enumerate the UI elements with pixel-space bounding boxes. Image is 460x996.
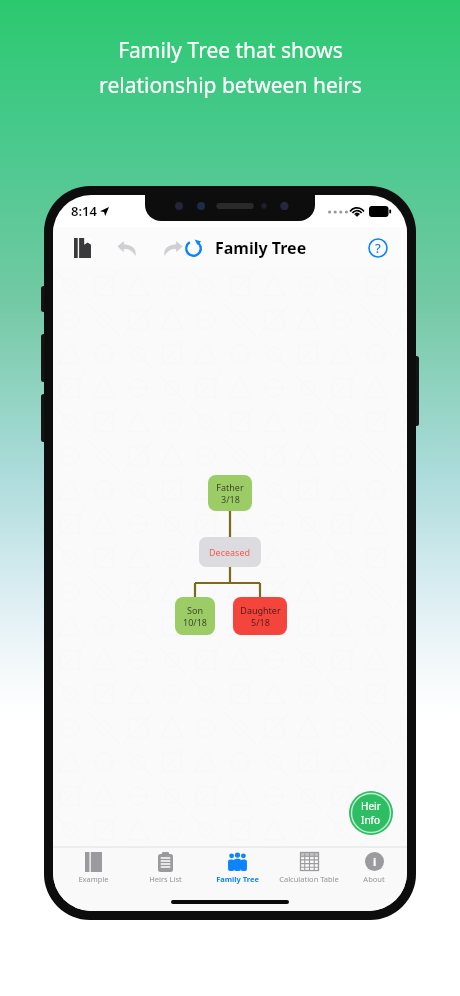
staticText: Heir — [361, 799, 381, 813]
staticText: Daughter — [240, 604, 281, 616]
staticText: ? — [375, 239, 381, 257]
staticText: Family Tree — [215, 237, 307, 259]
staticText: Info — [361, 813, 381, 827]
staticText: relationship between heirs — [99, 71, 362, 100]
staticText: Son — [187, 604, 203, 616]
button[interactable]: Heirs List — [129, 847, 201, 893]
button[interactable]: Calculation Table — [273, 847, 345, 893]
staticText: 10/18 — [183, 616, 207, 628]
staticText: 8:14 — [71, 202, 97, 220]
staticText: Heirs List — [149, 874, 182, 884]
staticText: 3/18 — [221, 493, 240, 505]
staticText: Example — [78, 874, 109, 884]
button[interactable]: Daughter — [233, 597, 287, 635]
button[interactable]: Example — [57, 847, 129, 893]
staticText: Family Tree that shows — [118, 36, 343, 65]
button[interactable]: Undo — [109, 230, 145, 266]
staticText: Calculation Table — [279, 874, 339, 884]
staticText: Deceased — [209, 546, 251, 558]
button[interactable]: Heir — [349, 791, 393, 835]
button[interactable]: Family Tree — [201, 847, 273, 893]
staticText: Father — [216, 481, 244, 493]
button[interactable]: Father — [208, 475, 252, 511]
button[interactable]: Refresh — [178, 233, 208, 263]
staticText: 5/18 — [251, 616, 270, 628]
button[interactable]: Help — [361, 231, 395, 265]
button[interactable]: i — [345, 847, 403, 893]
button[interactable]: Save — [65, 231, 99, 265]
staticText: Family Tree — [216, 874, 259, 884]
staticText: About — [363, 874, 385, 884]
button[interactable]: Redo — [155, 230, 191, 266]
staticText: i — [373, 854, 377, 869]
button[interactable]: Deceased — [199, 537, 261, 567]
button[interactable]: Son — [175, 597, 215, 635]
